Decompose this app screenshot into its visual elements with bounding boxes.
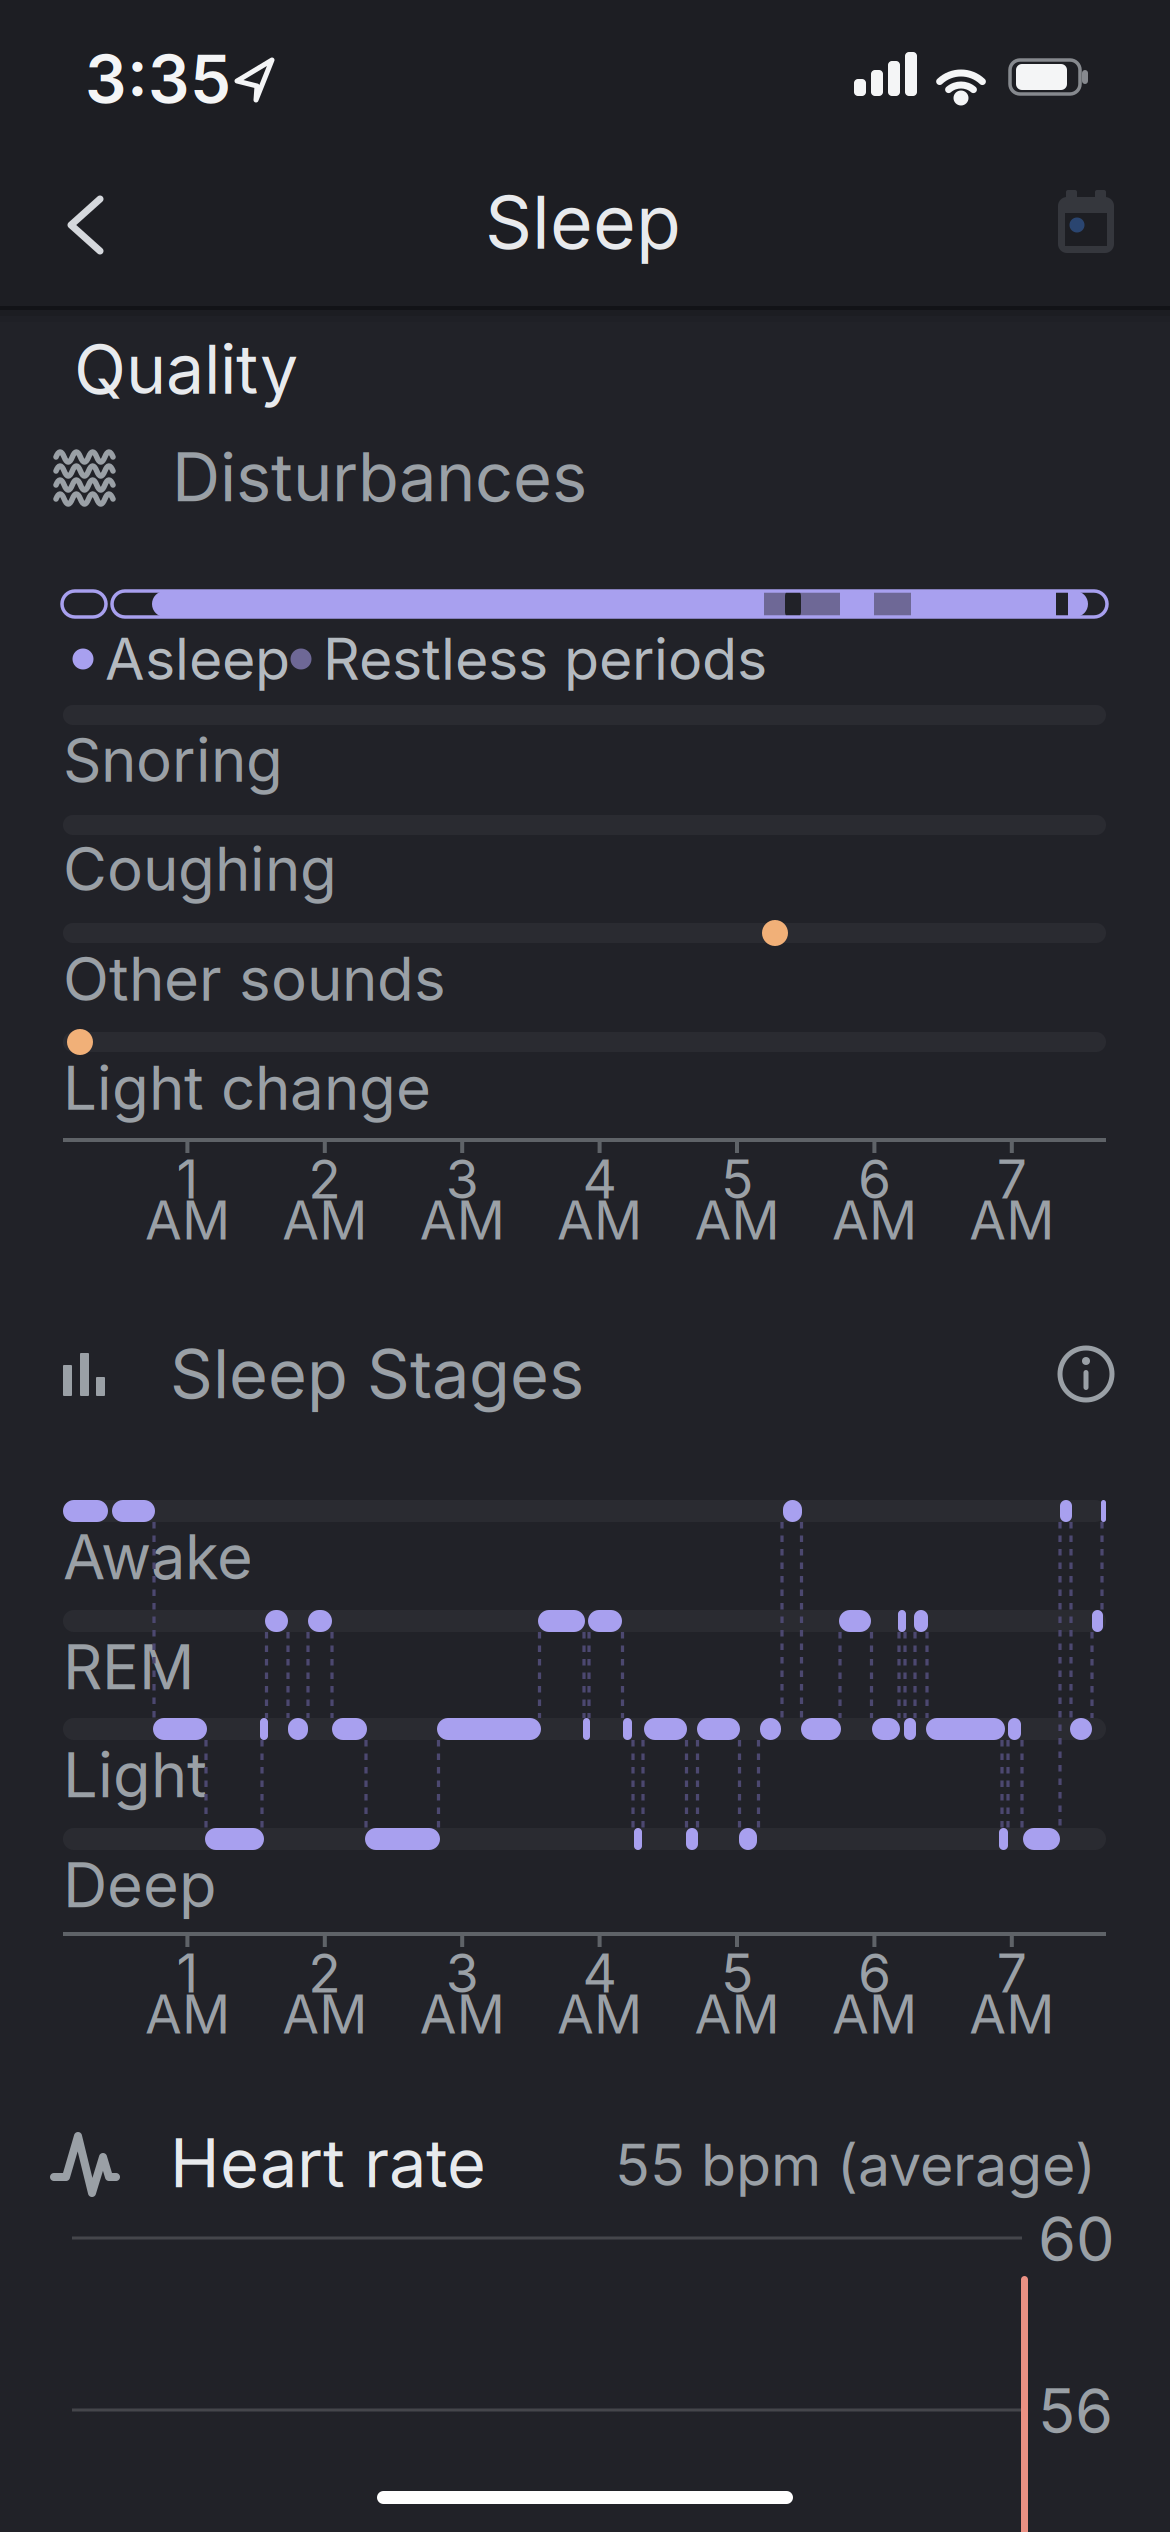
staticText: 2	[308, 1147, 341, 1210]
staticText: AM	[557, 1188, 642, 1251]
staticText: 6	[858, 1147, 891, 1210]
staticText: Restless periods	[323, 625, 767, 693]
staticText: AM	[420, 1188, 505, 1251]
staticText: 5	[721, 1941, 753, 2004]
staticText: AM	[282, 1188, 367, 1251]
staticText: AM	[694, 1188, 779, 1251]
staticText: Coughing	[63, 834, 337, 904]
staticText: 2	[308, 1941, 341, 2004]
staticText: AM	[282, 1982, 367, 2045]
staticText: 3	[446, 1941, 479, 2004]
staticText: Disturbances	[172, 438, 587, 516]
staticText: 4	[583, 1147, 617, 1210]
staticText: 5	[721, 1147, 753, 1210]
staticText: Quality	[74, 329, 298, 409]
staticText: 4	[583, 1941, 617, 2004]
staticText: AM	[969, 1982, 1054, 2045]
staticText: Asleep	[105, 625, 290, 693]
staticText: AM	[969, 1188, 1054, 1251]
staticText: AM	[145, 1188, 230, 1251]
staticText: 3:35	[85, 40, 231, 118]
staticText: 3	[446, 1147, 479, 1210]
staticText: AM	[832, 1188, 917, 1251]
staticText: 60	[1038, 2203, 1115, 2275]
staticText: 56	[1038, 2375, 1113, 2447]
staticText: Light	[63, 1739, 207, 1811]
staticText: 1	[176, 1941, 198, 2004]
staticText: Awake	[63, 1521, 253, 1593]
staticText: 7	[997, 1941, 1027, 2004]
staticText: Other sounds	[63, 944, 446, 1014]
button[interactable]	[1002, 155, 1170, 295]
staticText: REM	[63, 1631, 194, 1703]
staticText: 6	[858, 1941, 891, 2004]
staticText: Light change	[63, 1053, 431, 1123]
staticText: Sleep	[485, 179, 681, 265]
staticText: 7	[997, 1147, 1027, 1210]
staticText: 1	[176, 1147, 198, 1210]
staticText: AM	[832, 1982, 917, 2045]
staticText: AM	[145, 1982, 230, 2045]
staticText: Deep	[63, 1849, 217, 1921]
staticText: Snoring	[63, 725, 283, 795]
staticText: Sleep Stages	[170, 1335, 584, 1413]
staticText: AM	[420, 1982, 505, 2045]
button[interactable]	[1031, 1319, 1141, 1429]
staticText: Heart rate	[170, 2124, 486, 2202]
staticText: AM	[694, 1982, 779, 2045]
staticText: AM	[557, 1982, 642, 2045]
button[interactable]	[15, 155, 155, 295]
staticText: 55 bpm (average)	[615, 2131, 1096, 2199]
